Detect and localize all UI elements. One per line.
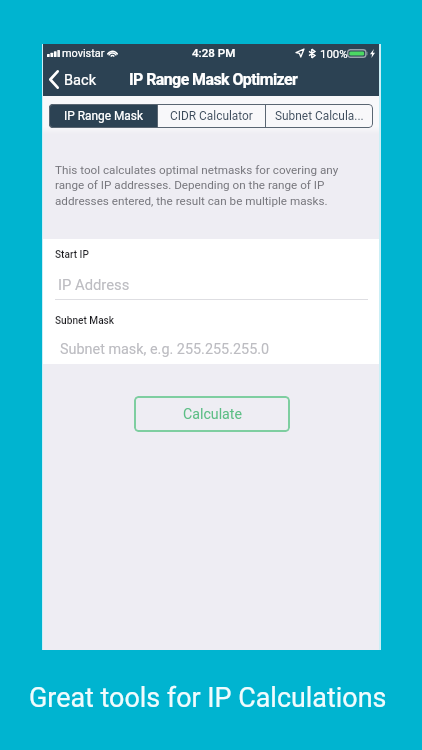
staticText: IP Range Mask Optimizer	[129, 70, 298, 89]
staticText: Subnet mask, e.g. 255.255.255.0	[60, 341, 270, 358]
staticText: Start IP	[55, 249, 89, 261]
staticText: Back	[64, 71, 97, 88]
button[interactable]: Subnet Calcula...	[266, 104, 373, 128]
button[interactable]: Calculate	[134, 396, 290, 432]
staticText: Subnet Mask	[55, 315, 115, 327]
staticText: IP Address	[58, 276, 130, 293]
staticText: IP Range Mask	[64, 109, 143, 123]
staticText: Subnet Calcula...	[275, 109, 364, 123]
staticText: CIDR Calculator	[170, 109, 253, 123]
staticText: Great tools for IP Calculations	[29, 682, 387, 714]
button[interactable]: Back	[44, 66, 103, 92]
staticText: This tool calculates optimal netmasks fo…	[55, 163, 370, 208]
button[interactable]: CIDR Calculator	[158, 104, 265, 128]
staticText: Calculate	[183, 406, 242, 423]
staticText: 4:28 PM	[192, 46, 236, 60]
staticText: movistar	[62, 47, 105, 60]
button[interactable]: IP Range Mask	[49, 104, 157, 128]
staticText: 100%	[320, 47, 348, 60]
